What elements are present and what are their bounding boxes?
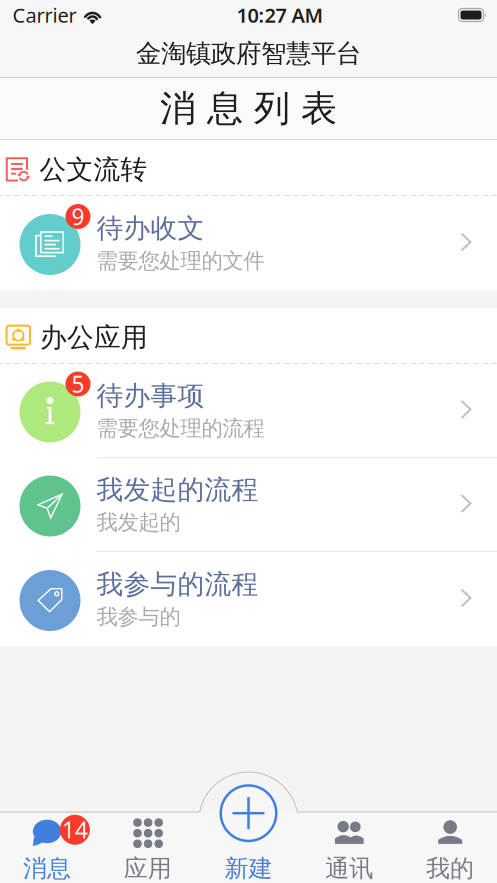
- button[interactable]: 通讯: [299, 812, 400, 883]
- staticText: 5: [71, 369, 84, 399]
- button[interactable]: 5: [0, 364, 497, 458]
- staticText: 14: [62, 815, 88, 845]
- button[interactable]: 14: [0, 812, 97, 883]
- staticText: 我参与的: [96, 604, 180, 630]
- button[interactable]: 我发起的流程: [0, 458, 497, 552]
- staticText: 需要您处理的流程: [96, 415, 264, 441]
- button[interactable]: 新建: [198, 812, 299, 883]
- staticText: 我的: [426, 854, 474, 883]
- button[interactable]: 我参与的流程: [0, 552, 497, 646]
- button[interactable]: 我的: [400, 812, 497, 883]
- staticText: 9: [71, 201, 84, 231]
- staticText: 金淘镇政府智慧平台: [136, 38, 361, 69]
- staticText: 办公应用: [40, 321, 148, 354]
- staticText: 消息: [23, 854, 71, 883]
- button[interactable]: 应用: [97, 812, 198, 883]
- staticText: 通讯: [325, 854, 373, 883]
- staticText: 需要您处理的文件: [96, 248, 264, 274]
- staticText: 待办事项: [96, 379, 204, 412]
- staticText: 应用: [124, 854, 172, 883]
- staticText: 公文流转: [39, 153, 147, 186]
- staticText: 10:27 AM: [236, 2, 323, 28]
- staticText: 我发起的: [96, 509, 180, 535]
- staticText: Carrier: [12, 2, 76, 28]
- staticText: 待办收文: [96, 212, 204, 245]
- button[interactable]: 9: [0, 196, 497, 290]
- staticText: 我参与的流程: [96, 568, 258, 601]
- staticText: 新建: [224, 854, 272, 883]
- staticText: 消 息 列 表: [160, 86, 337, 131]
- staticText: 我发起的流程: [96, 473, 258, 506]
